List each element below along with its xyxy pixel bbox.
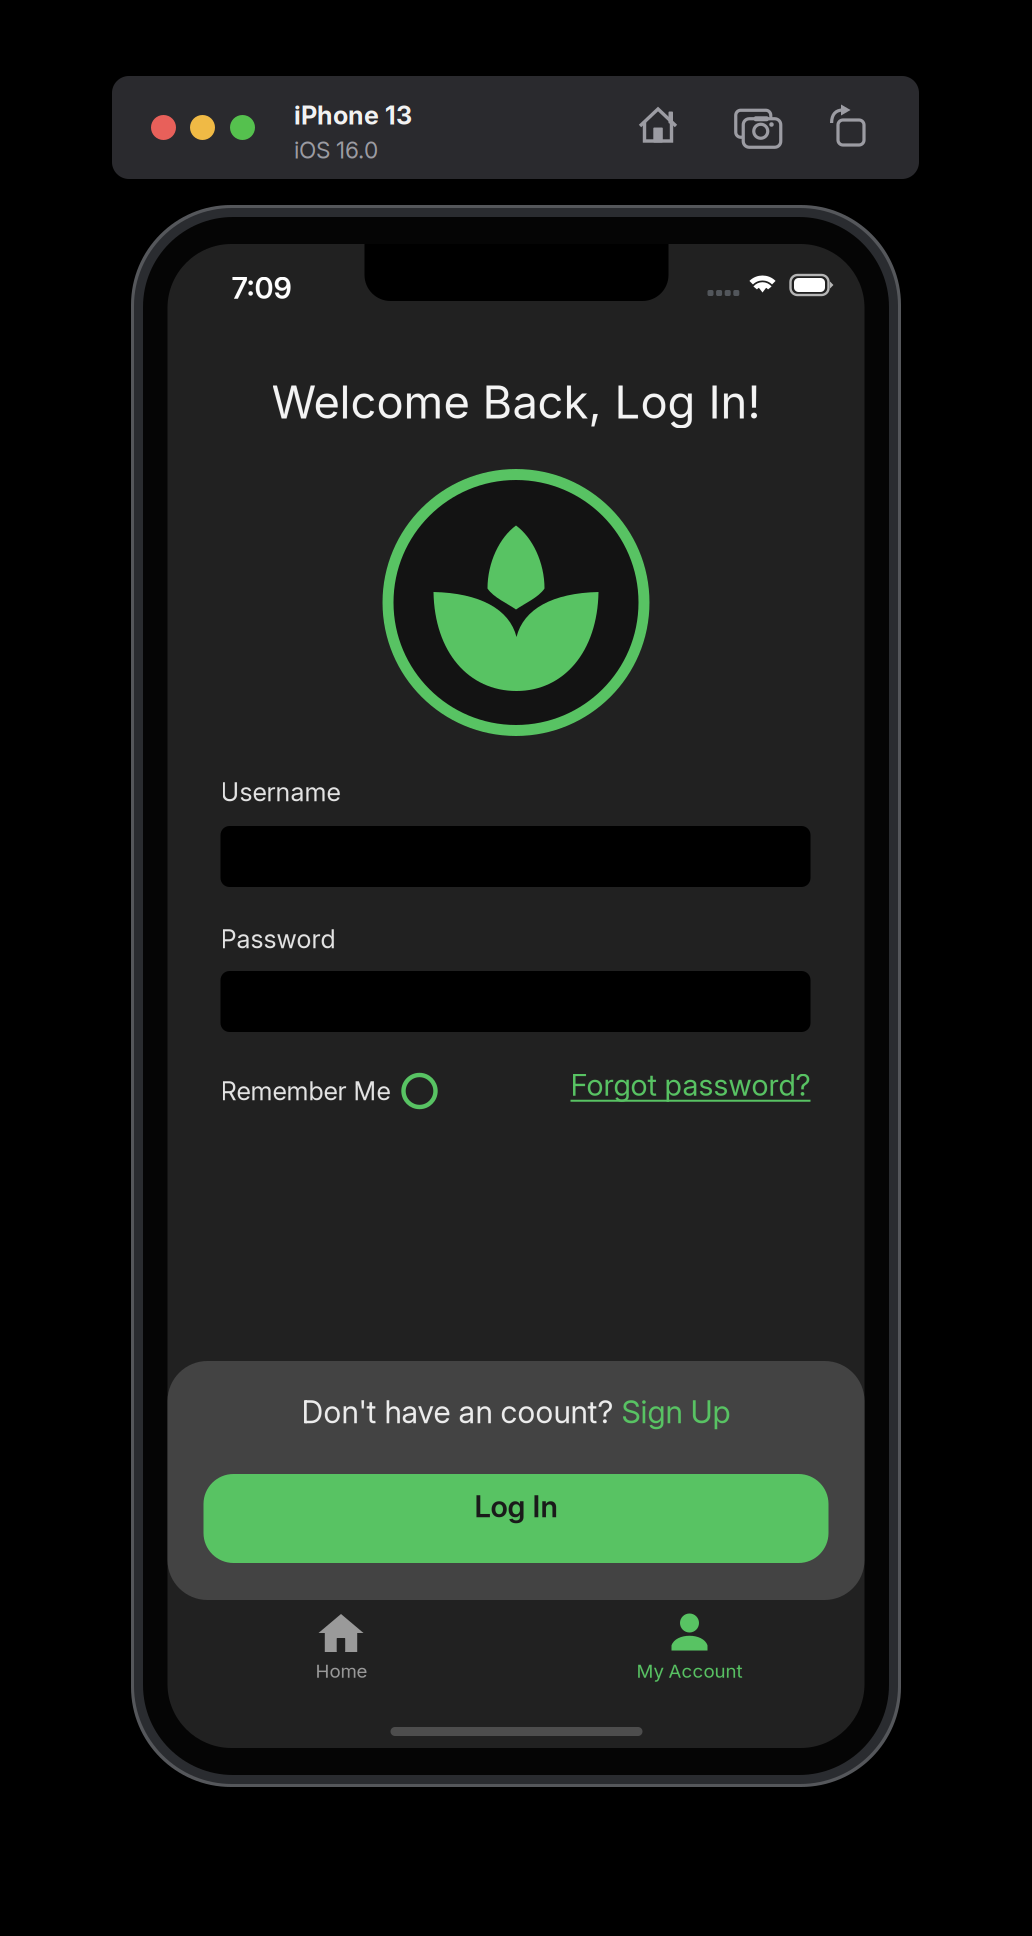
staticText: Username [220,777,340,807]
staticText: Remember Me [220,1076,390,1106]
staticText: Don't have an coount? [301,1393,621,1430]
button[interactable]: Log In [203,1474,828,1563]
button[interactable]: Remember Me [220,1068,440,1114]
staticText: iPhone 13 [294,100,412,131]
button[interactable]: Rotate device [816,95,876,155]
staticText: iOS 16.0 [294,137,378,164]
button[interactable]: Forgot password? [565,1062,810,1108]
button[interactable]: Home [241,1600,441,1748]
button[interactable]: My Account [589,1600,789,1748]
staticText: Log In [474,1489,557,1524]
staticText: My Account [636,1660,742,1682]
staticText: Sign Up [621,1393,730,1430]
staticText: Welcome Back, Log In! [271,375,760,429]
button[interactable]: Screenshot [727,95,787,155]
staticText: 7:09 [231,270,291,306]
button[interactable]: Home [628,95,688,155]
staticText: Home [315,1660,367,1682]
button[interactable]: Sign Up [621,1393,730,1430]
staticText: Password [220,924,335,954]
staticText: Forgot password? [570,1067,810,1103]
